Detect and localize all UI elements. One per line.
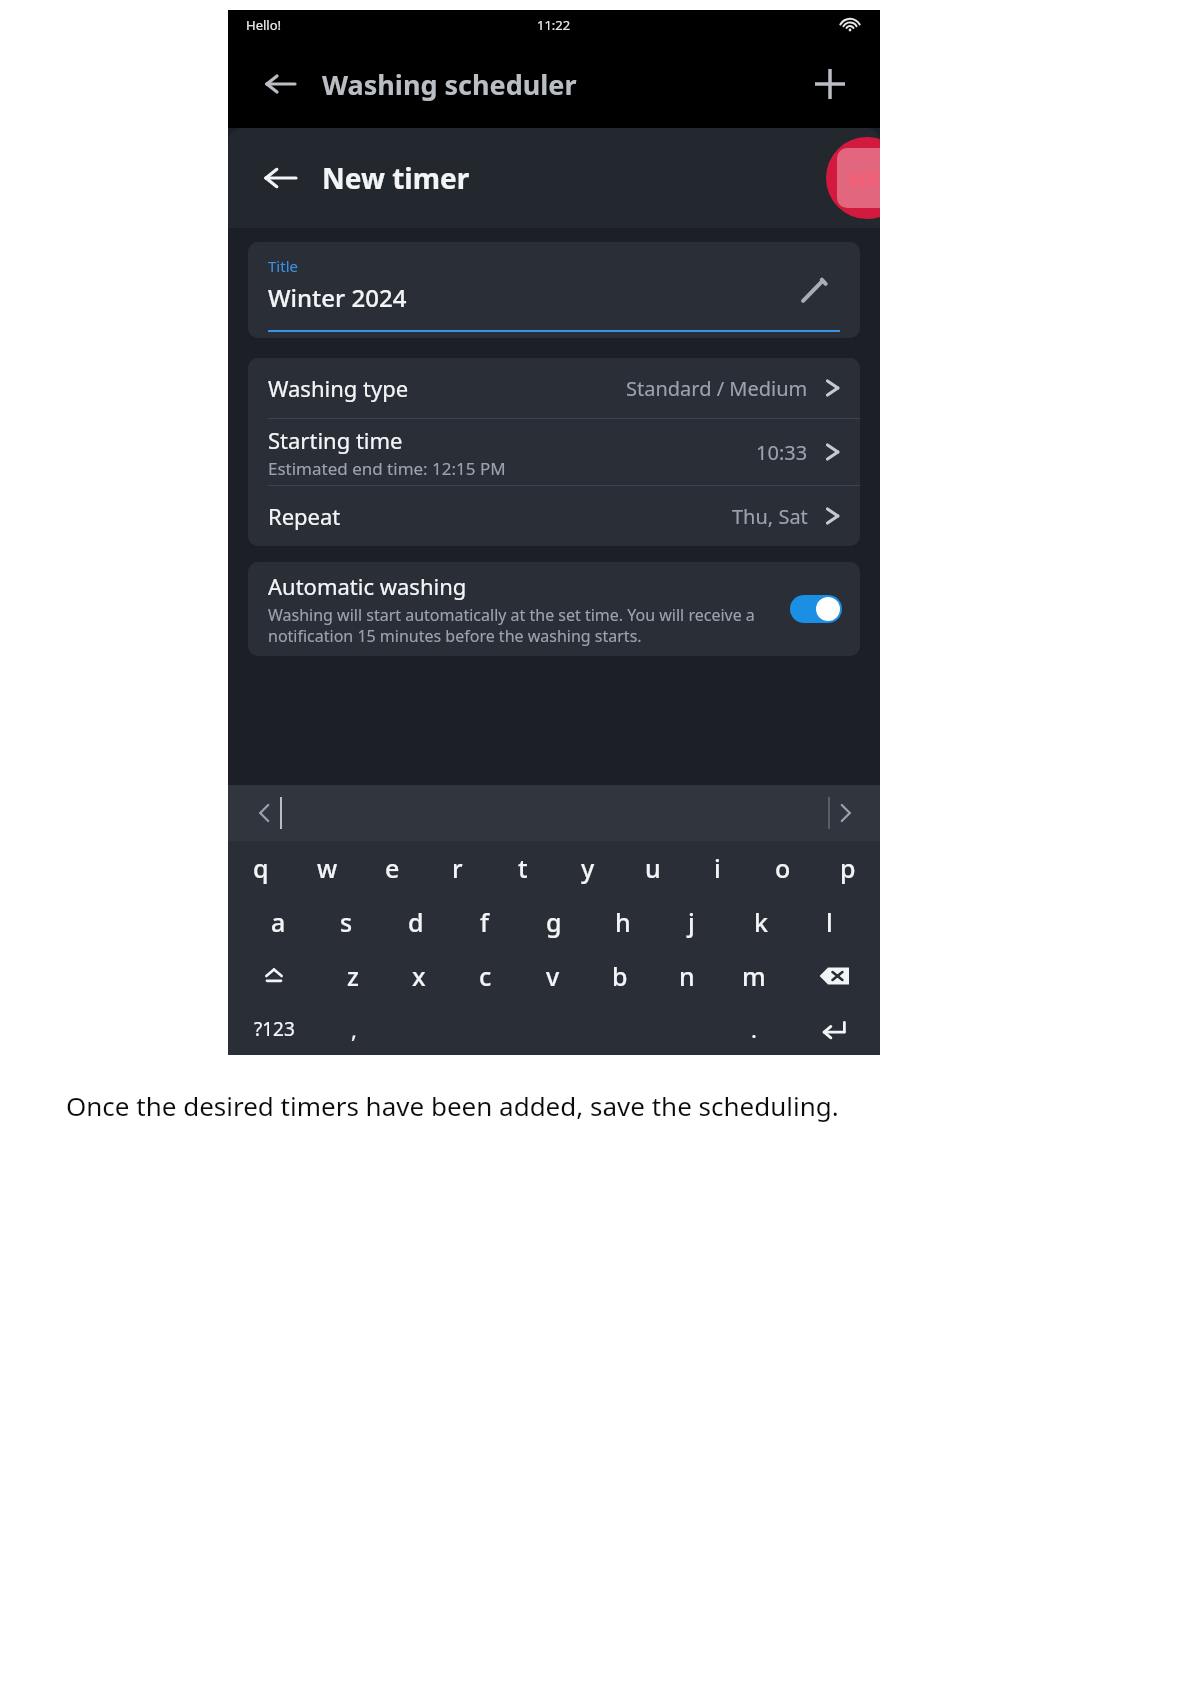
button[interactable]: ?123 — [228, 1003, 320, 1055]
staticText: 11:22 — [537, 16, 571, 34]
staticText: Once the desired timers have been added,… — [66, 1088, 839, 1123]
staticText: w — [317, 851, 338, 885]
staticText: Washing scheduler — [322, 66, 577, 103]
staticText: ADD — [849, 167, 880, 190]
staticText: j — [688, 905, 695, 939]
staticText: Automatic washing — [268, 571, 467, 601]
button[interactable]: Back — [252, 150, 308, 206]
staticText: Starting time — [268, 425, 403, 455]
staticText: k — [754, 905, 768, 939]
staticText: p — [840, 851, 856, 885]
staticText: l — [826, 905, 833, 939]
staticText: y — [581, 851, 595, 885]
staticText: Hello! — [246, 16, 282, 34]
staticText: Title — [268, 256, 298, 276]
button[interactable]: x — [386, 949, 452, 1003]
staticText: Repeat — [268, 501, 341, 531]
staticText: s — [340, 905, 353, 939]
staticText: Washing type — [268, 373, 409, 403]
staticText: Winter 2024 — [268, 281, 407, 314]
button[interactable]: Add — [802, 56, 858, 112]
button[interactable]: e — [360, 841, 425, 895]
button[interactable]: a — [244, 895, 312, 949]
staticText: g — [546, 905, 562, 939]
button[interactable]: o — [750, 841, 815, 895]
button[interactable]: j — [657, 895, 726, 949]
staticText: New timer — [322, 159, 470, 197]
staticText: Estimated end time: 12:15 PM — [268, 457, 506, 480]
button[interactable]: Automatic washing — [248, 562, 860, 656]
button[interactable]: Previous — [250, 798, 280, 828]
staticText: u — [645, 851, 661, 885]
staticText: m — [742, 959, 766, 993]
staticText: Thu, Sat — [732, 503, 808, 530]
button[interactable]: v — [519, 949, 586, 1003]
staticText: Standard / Medium — [626, 375, 808, 402]
button[interactable]: w — [294, 841, 360, 895]
button[interactable]: p — [815, 841, 880, 895]
button[interactable]: ADD — [826, 137, 880, 219]
staticText: r — [452, 851, 463, 885]
button[interactable]: n — [653, 949, 720, 1003]
staticText: d — [408, 905, 424, 939]
button[interactable]: Washing type — [248, 358, 860, 419]
button[interactable]: c — [452, 949, 519, 1003]
button[interactable]: Next — [830, 798, 860, 828]
staticText: t — [518, 851, 528, 885]
staticText: f — [480, 905, 489, 939]
button[interactable]: s — [312, 895, 381, 949]
staticText: , — [351, 1014, 357, 1044]
staticText: v — [546, 959, 560, 993]
staticText: z — [347, 959, 359, 993]
button[interactable]: t — [490, 841, 555, 895]
staticText: i — [714, 851, 721, 885]
staticText: 10:33 — [756, 439, 808, 466]
button[interactable]: Repeat — [248, 486, 860, 546]
button[interactable]: f — [450, 895, 519, 949]
button[interactable]: Backspace — [787, 949, 880, 1003]
button[interactable]: k — [726, 895, 795, 949]
button[interactable] — [790, 595, 842, 623]
button[interactable]: . — [720, 1003, 787, 1055]
button[interactable]: b — [586, 949, 653, 1003]
staticText: a — [271, 905, 286, 939]
button[interactable]: Edit title — [792, 268, 836, 312]
button[interactable]: Starting time — [248, 419, 860, 486]
button[interactable]: Enter — [787, 1003, 880, 1055]
staticText: q — [253, 851, 269, 885]
button[interactable]: y — [555, 841, 620, 895]
staticText: ?123 — [254, 1016, 295, 1042]
button[interactable]: , — [320, 1003, 387, 1055]
button[interactable]: h — [588, 895, 657, 949]
button[interactable]: r — [425, 841, 490, 895]
button[interactable]: m — [720, 949, 787, 1003]
staticText: c — [479, 959, 492, 993]
button[interactable]: Shift — [228, 949, 320, 1003]
staticText: h — [615, 905, 631, 939]
staticText: b — [612, 959, 628, 993]
button[interactable]: u — [620, 841, 685, 895]
staticText: Washing will start automatically at the … — [268, 604, 780, 647]
button[interactable]: g — [519, 895, 588, 949]
staticText: . — [751, 1014, 757, 1044]
button[interactable]: z — [320, 949, 386, 1003]
button[interactable]: i — [685, 841, 750, 895]
staticText: e — [385, 851, 400, 885]
button[interactable]: l — [795, 895, 864, 949]
button[interactable]: q — [228, 841, 294, 895]
staticText: o — [775, 851, 791, 885]
staticText: x — [412, 959, 426, 993]
staticText: n — [679, 959, 695, 993]
button[interactable]: Back — [252, 56, 308, 112]
button[interactable]: d — [381, 895, 450, 949]
